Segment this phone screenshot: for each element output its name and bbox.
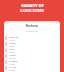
button[interactable]: Burpees — [4, 59, 60, 65]
staticText: Workouts — [4, 24, 60, 28]
button[interactable]: Sit Ups — [4, 65, 60, 71]
button[interactable]: Push Ups — [4, 35, 60, 41]
staticText: Plank — [9, 48, 15, 51]
staticText: EXERCISING — [20, 8, 44, 13]
button[interactable]: Squats — [4, 41, 60, 47]
staticText: Lunges — [9, 54, 17, 57]
staticText: 16 reps — [9, 57, 16, 59]
staticText: 25 reps — [9, 69, 16, 71]
staticText: Push Ups — [9, 36, 19, 39]
staticText: choose a plan — [4, 30, 60, 33]
staticText: 12 reps — [9, 39, 16, 41]
staticText: 60 sec — [9, 51, 15, 53]
staticText: 10 reps — [9, 63, 16, 65]
staticText: 20 reps — [9, 45, 16, 47]
staticText: Squats — [9, 42, 16, 45]
staticText: VARIETY OF — [21, 3, 44, 8]
staticText: Sit Ups — [9, 66, 17, 69]
staticText: Burpees — [9, 60, 18, 63]
button[interactable]: Lunges — [4, 53, 60, 59]
button[interactable]: Plank — [4, 47, 60, 53]
